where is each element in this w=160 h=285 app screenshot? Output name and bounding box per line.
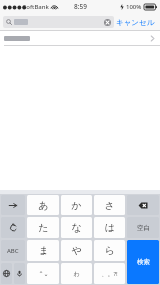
staticText: ら <box>104 244 115 257</box>
button[interactable]: か <box>61 195 92 215</box>
staticText: 検索 <box>137 258 150 266</box>
button[interactable]: Undo <box>1 217 25 238</box>
staticText: わ <box>73 270 80 278</box>
staticText: か <box>71 199 82 212</box>
button[interactable]: Delete <box>127 195 159 215</box>
staticText: あ <box>38 199 49 212</box>
staticText: な <box>71 221 82 234</box>
button[interactable]: や <box>61 240 92 261</box>
button[interactable]: わ <box>61 263 92 284</box>
button[interactable]: Dictation <box>14 263 25 284</box>
staticText: さ <box>104 199 115 212</box>
button[interactable]: Space <box>127 217 159 238</box>
button[interactable]: な <box>61 217 92 238</box>
staticText: 100% <box>126 3 142 11</box>
staticText: や <box>71 244 82 257</box>
button[interactable]: 、。?! <box>94 263 125 284</box>
staticText: ま <box>38 244 49 257</box>
button[interactable]: ⌃⌄ <box>27 263 59 284</box>
button[interactable]: キャンセル <box>114 16 157 29</box>
button[interactable]: Clear text <box>3 16 114 28</box>
staticText: ABC <box>7 247 19 255</box>
button[interactable] <box>0 31 160 46</box>
staticText: 空白 <box>137 224 150 232</box>
button[interactable]: Switch keyboard <box>1 263 12 284</box>
button[interactable]: ABC <box>1 240 25 261</box>
staticText: 8:59 <box>74 2 87 11</box>
button[interactable]: さ <box>94 195 125 215</box>
button[interactable]: ら <box>94 240 125 261</box>
button[interactable]: Next candidate <box>1 195 25 215</box>
staticText: SoftBank <box>23 3 49 11</box>
staticText: は <box>104 221 115 234</box>
staticText: 、。?! <box>101 270 118 278</box>
button[interactable]: た <box>27 217 59 238</box>
button[interactable]: ま <box>27 240 59 261</box>
staticText: ⌃⌄ <box>38 270 49 277</box>
button[interactable]: は <box>94 217 125 238</box>
button[interactable]: 検索 <box>127 240 159 284</box>
button[interactable]: あ <box>27 195 59 215</box>
staticText: キャンセル <box>116 18 155 27</box>
staticText: た <box>38 221 49 234</box>
button[interactable]: Clear text <box>104 19 111 26</box>
